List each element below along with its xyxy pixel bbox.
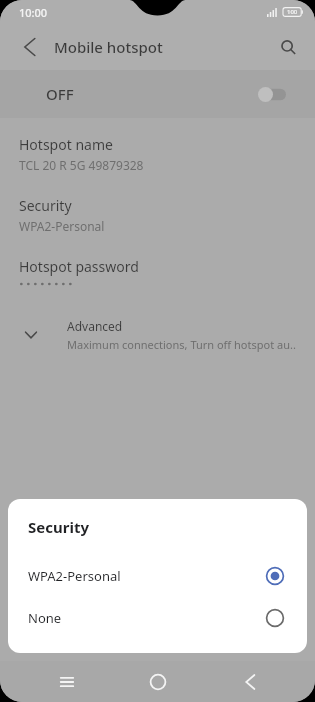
staticText: Security [28,517,89,537]
button[interactable]: Back [8,28,46,66]
staticText: 10:00 [19,5,48,20]
staticText: Hotspot name [19,135,113,154]
button[interactable]: Security [0,193,315,237]
staticText: OFF [46,84,74,104]
staticText: Advanced [67,318,123,334]
staticText: WPA2-Personal [28,567,121,585]
button[interactable]: Advanced [0,314,315,356]
staticText: Hotspot password [19,257,139,276]
staticText: Maximum connections, Turn off hotspot au… [67,337,296,352]
button[interactable]: Recents [44,661,90,702]
staticText: TCL 20 R 5G 49879328 [19,157,144,173]
button[interactable]: Back [225,661,271,702]
button[interactable]: Hotspot name [0,132,315,176]
staticText: 100 [287,8,298,16]
staticText: WPA2-Personal [19,218,105,234]
button[interactable]: OFF [0,70,315,118]
button[interactable]: None [8,597,307,639]
button[interactable]: WPA2-Personal [8,555,307,597]
button[interactable]: Home [135,661,181,702]
staticText: Mobile hotspot [54,37,163,57]
button[interactable]: Hotspot password [0,254,315,291]
staticText: None [28,609,62,627]
staticText: Security [19,196,72,215]
button[interactable]: Search [269,28,307,66]
